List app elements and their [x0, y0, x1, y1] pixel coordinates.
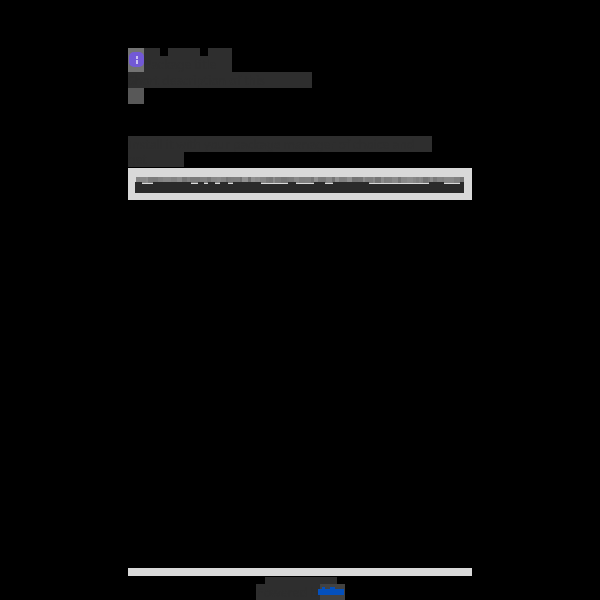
button[interactable]: Package icon — [128, 48, 144, 72]
button[interactable]: Copy install command — [128, 168, 472, 200]
staticText: Powered by — [256, 584, 325, 600]
button[interactable]: Open project website — [320, 584, 345, 600]
